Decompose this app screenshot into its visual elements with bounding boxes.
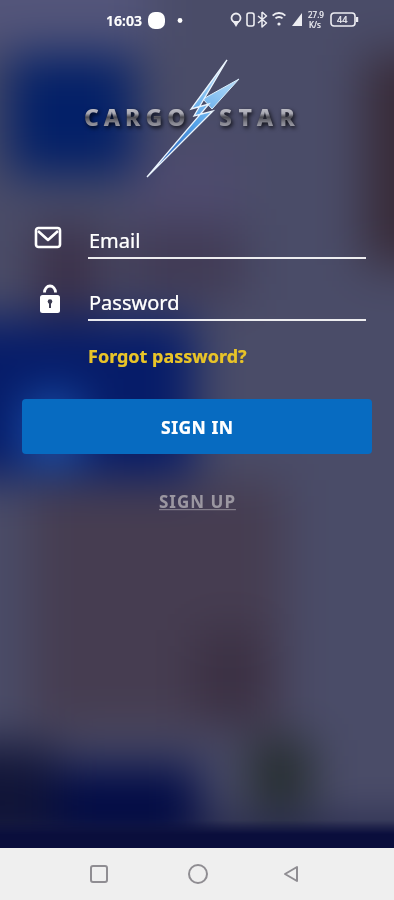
staticText: K/s bbox=[309, 19, 321, 30]
staticText: STAR bbox=[219, 101, 302, 132]
button[interactable]: Forgot password? bbox=[88, 344, 247, 369]
staticText: SIGN UP bbox=[159, 490, 236, 513]
staticText: 27.9 bbox=[308, 9, 324, 20]
button[interactable] bbox=[75, 850, 123, 898]
staticText: CARGO bbox=[84, 101, 191, 132]
staticText: SIGN IN bbox=[161, 415, 234, 439]
staticText: 44 bbox=[337, 13, 348, 25]
button[interactable] bbox=[174, 850, 222, 898]
button[interactable]: Password bbox=[22, 280, 372, 324]
staticText: 16:03 bbox=[106, 11, 142, 30]
staticText: Password bbox=[89, 289, 180, 316]
button[interactable]: SIGN IN bbox=[22, 399, 372, 454]
staticText: Email bbox=[89, 227, 141, 254]
staticText: Forgot password? bbox=[88, 344, 247, 369]
button[interactable] bbox=[268, 850, 316, 898]
button[interactable]: Email bbox=[22, 218, 372, 262]
button[interactable]: SIGN UP bbox=[159, 490, 236, 513]
